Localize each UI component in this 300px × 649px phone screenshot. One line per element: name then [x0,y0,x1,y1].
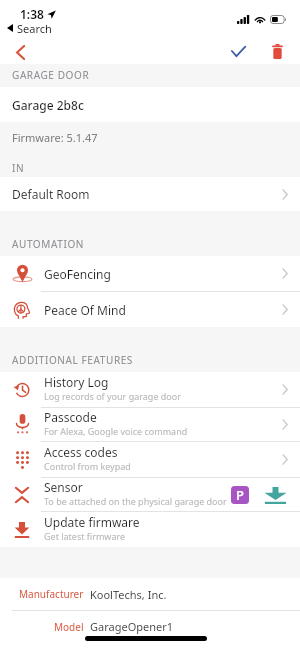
button[interactable]: Download [264,486,287,504]
staticText: AUTOMATION [12,237,84,251]
button[interactable]: Passcode [0,408,300,441]
staticText: Get latest firmware [44,530,126,542]
staticText: 1:38 [20,6,44,22]
staticText: Control from keypad [44,460,131,472]
staticText: Peace Of Mind [44,302,126,318]
button[interactable]: Save [225,39,251,64]
staticText: P [236,486,244,504]
staticText: Log records of your garage door [44,390,181,402]
button[interactable]: Update firmware [0,512,300,547]
button[interactable]: Default Room [0,177,300,211]
button[interactable]: History Log [0,372,300,407]
staticText: Sensor [44,479,83,495]
staticText: Default Room [12,186,90,202]
staticText: Manufacturer [19,587,84,601]
staticText: Passcode [44,409,97,425]
staticText: IN [12,161,25,175]
staticText: Search [17,21,52,34]
staticText: To be attached on the physical garage do… [44,495,227,507]
button[interactable]: Access codes [0,442,300,477]
staticText: GarageOpener1 [90,619,174,634]
staticText: Update firmware [44,514,140,530]
button[interactable]: Garage 2b8c [0,87,300,122]
staticText: Firmware: 5.1.47 [12,130,98,145]
staticText: Garage 2b8c [12,97,84,113]
staticText: Model [54,620,84,634]
button[interactable]: Peace Of Mind [0,292,300,327]
staticText: GeoFencing [44,266,111,282]
button[interactable]: Delete [264,39,290,64]
staticText: GARAGE DOOR [12,68,90,82]
staticText: ADDITIONAL FEATURES [12,353,133,367]
staticText: Access codes [44,444,118,460]
button[interactable]: Sensor [0,478,300,511]
button[interactable]: GeoFencing [0,256,300,291]
button[interactable]: Pair device [231,486,249,504]
staticText: KoolTechs, Inc. [90,587,167,602]
staticText: For Alexa, Google voice command [44,425,188,437]
staticText: History Log [44,374,109,390]
button[interactable]: Model [0,611,300,642]
button[interactable]: Manufacturer [0,578,300,610]
button[interactable]: Back [7,40,33,64]
